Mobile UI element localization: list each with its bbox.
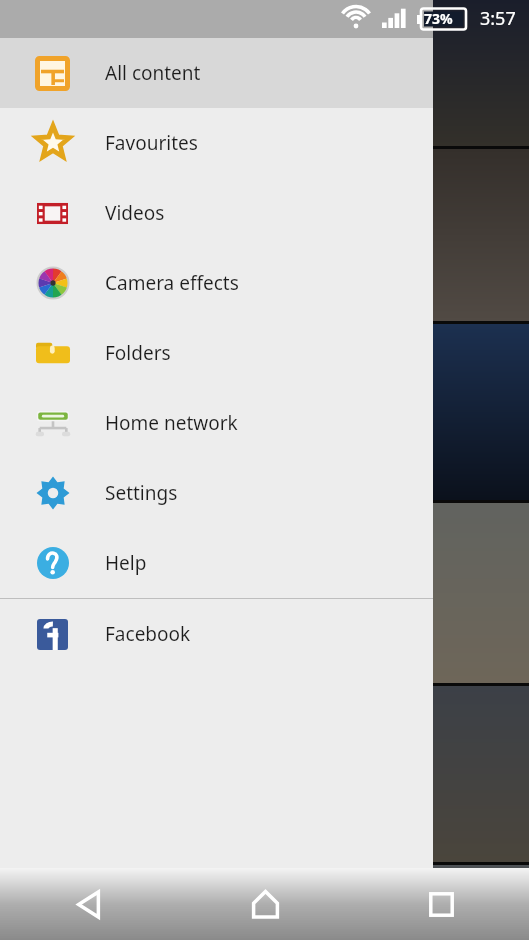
staticText: Help <box>105 550 147 576</box>
button[interactable]: Favourites <box>0 108 433 178</box>
staticText: Camera effects <box>105 270 239 296</box>
staticText: 3:57 <box>480 6 516 31</box>
button[interactable]: Camera effects <box>0 248 433 318</box>
staticText: Facebook <box>105 621 191 647</box>
staticText: Home network <box>105 410 238 436</box>
button[interactable]: Home network <box>0 388 433 458</box>
button[interactable]: Facebook <box>0 599 433 669</box>
button[interactable]: Settings <box>0 458 433 528</box>
button[interactable]: Videos <box>0 178 433 248</box>
staticText: Videos <box>105 200 165 226</box>
button[interactable]: Help <box>0 528 433 598</box>
staticText: 73% <box>424 9 453 28</box>
button[interactable]: Back <box>0 868 177 940</box>
staticText: Folders <box>105 340 171 366</box>
staticText: Settings <box>105 480 178 506</box>
button[interactable]: Home <box>177 868 353 940</box>
staticText: All content <box>105 60 201 86</box>
button[interactable]: Recents <box>353 868 529 940</box>
staticText: Favourites <box>105 130 198 156</box>
button[interactable]: All content <box>0 38 433 108</box>
button[interactable]: Folders <box>0 318 433 388</box>
